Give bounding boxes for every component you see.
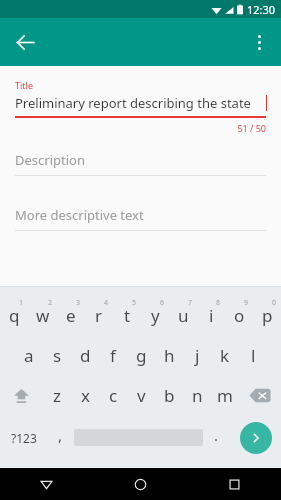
staticText: s: [53, 344, 62, 367]
staticText: a: [24, 344, 34, 367]
button[interactable]: .: [203, 415, 230, 460]
button[interactable]: Shift: [0, 375, 43, 415]
staticText: e: [66, 304, 76, 327]
staticText: 8: [216, 298, 221, 308]
button[interactable]: 6: [141, 292, 169, 335]
button[interactable]: Back: [0, 468, 93, 500]
staticText: d: [80, 344, 91, 367]
button[interactable]: 0: [253, 292, 281, 335]
button[interactable]: b: [155, 375, 183, 415]
staticText: 5: [132, 298, 137, 308]
staticText: 2: [48, 298, 53, 308]
button[interactable]: 3: [57, 292, 85, 335]
button[interactable]: l: [239, 335, 267, 375]
staticText: More descriptive text: [15, 206, 144, 224]
staticText: 3: [76, 298, 81, 308]
staticText: c: [109, 384, 118, 407]
button[interactable]: More options: [242, 25, 276, 59]
staticText: 12:30: [247, 2, 276, 17]
staticText: Description: [15, 151, 85, 169]
staticText: r: [95, 304, 103, 327]
staticText: k: [220, 344, 230, 367]
staticText: 0: [272, 298, 277, 308]
button[interactable]: 9: [225, 292, 253, 335]
staticText: i: [209, 304, 214, 327]
staticText: x: [81, 384, 90, 407]
button[interactable]: m: [211, 375, 239, 415]
staticText: f: [110, 344, 116, 367]
button[interactable]: More descriptive text: [15, 206, 266, 231]
staticText: g: [136, 344, 147, 367]
button[interactable]: g: [127, 335, 155, 375]
button[interactable]: v: [127, 375, 155, 415]
staticText: u: [178, 304, 189, 327]
button[interactable]: Space: [74, 415, 203, 460]
staticText: Preliminary report describing the state …: [15, 94, 266, 112]
button[interactable]: 8: [197, 292, 225, 335]
staticText: .: [214, 425, 219, 445]
button[interactable]: Title: [15, 79, 266, 134]
button[interactable]: Description: [15, 151, 266, 176]
button[interactable]: Navigate up: [7, 24, 43, 60]
button[interactable]: ?123: [0, 415, 47, 460]
staticText: 4: [104, 298, 109, 308]
staticText: m: [217, 384, 233, 407]
staticText: j: [195, 344, 200, 367]
staticText: Title: [15, 79, 33, 91]
staticText: t: [124, 304, 131, 327]
button[interactable]: a: [15, 335, 43, 375]
button[interactable]: Delete: [239, 375, 281, 415]
button[interactable]: j: [183, 335, 211, 375]
button[interactable]: Enter: [230, 415, 281, 460]
staticText: p: [262, 304, 273, 327]
button[interactable]: f: [99, 335, 127, 375]
button[interactable]: 2: [29, 292, 57, 335]
staticText: y: [151, 304, 160, 327]
button[interactable]: x: [71, 375, 99, 415]
button[interactable]: 5: [113, 292, 141, 335]
button[interactable]: ,: [47, 415, 74, 460]
staticText: b: [164, 384, 175, 407]
staticText: 7: [188, 298, 193, 308]
staticText: z: [53, 384, 61, 407]
staticText: q: [9, 304, 20, 327]
button[interactable]: Recents: [187, 468, 281, 500]
button[interactable]: k: [211, 335, 239, 375]
staticText: 6: [160, 298, 165, 308]
button[interactable]: 1: [0, 292, 29, 335]
staticText: v: [137, 384, 146, 407]
staticText: o: [234, 304, 245, 327]
button[interactable]: c: [99, 375, 127, 415]
staticText: h: [164, 344, 175, 367]
staticText: n: [192, 384, 203, 407]
staticText: ?123: [11, 430, 37, 446]
button[interactable]: d: [71, 335, 99, 375]
button[interactable]: s: [43, 335, 71, 375]
staticText: ,: [58, 425, 63, 445]
staticText: 51 / 50: [15, 122, 266, 134]
staticText: w: [36, 304, 50, 327]
button[interactable]: Home: [93, 468, 187, 500]
button[interactable]: h: [155, 335, 183, 375]
button[interactable]: n: [183, 375, 211, 415]
staticText: l: [251, 344, 256, 367]
button[interactable]: 7: [169, 292, 197, 335]
staticText: 9: [244, 298, 249, 308]
button[interactable]: z: [43, 375, 71, 415]
button[interactable]: 4: [85, 292, 113, 335]
staticText: 1: [19, 298, 24, 308]
